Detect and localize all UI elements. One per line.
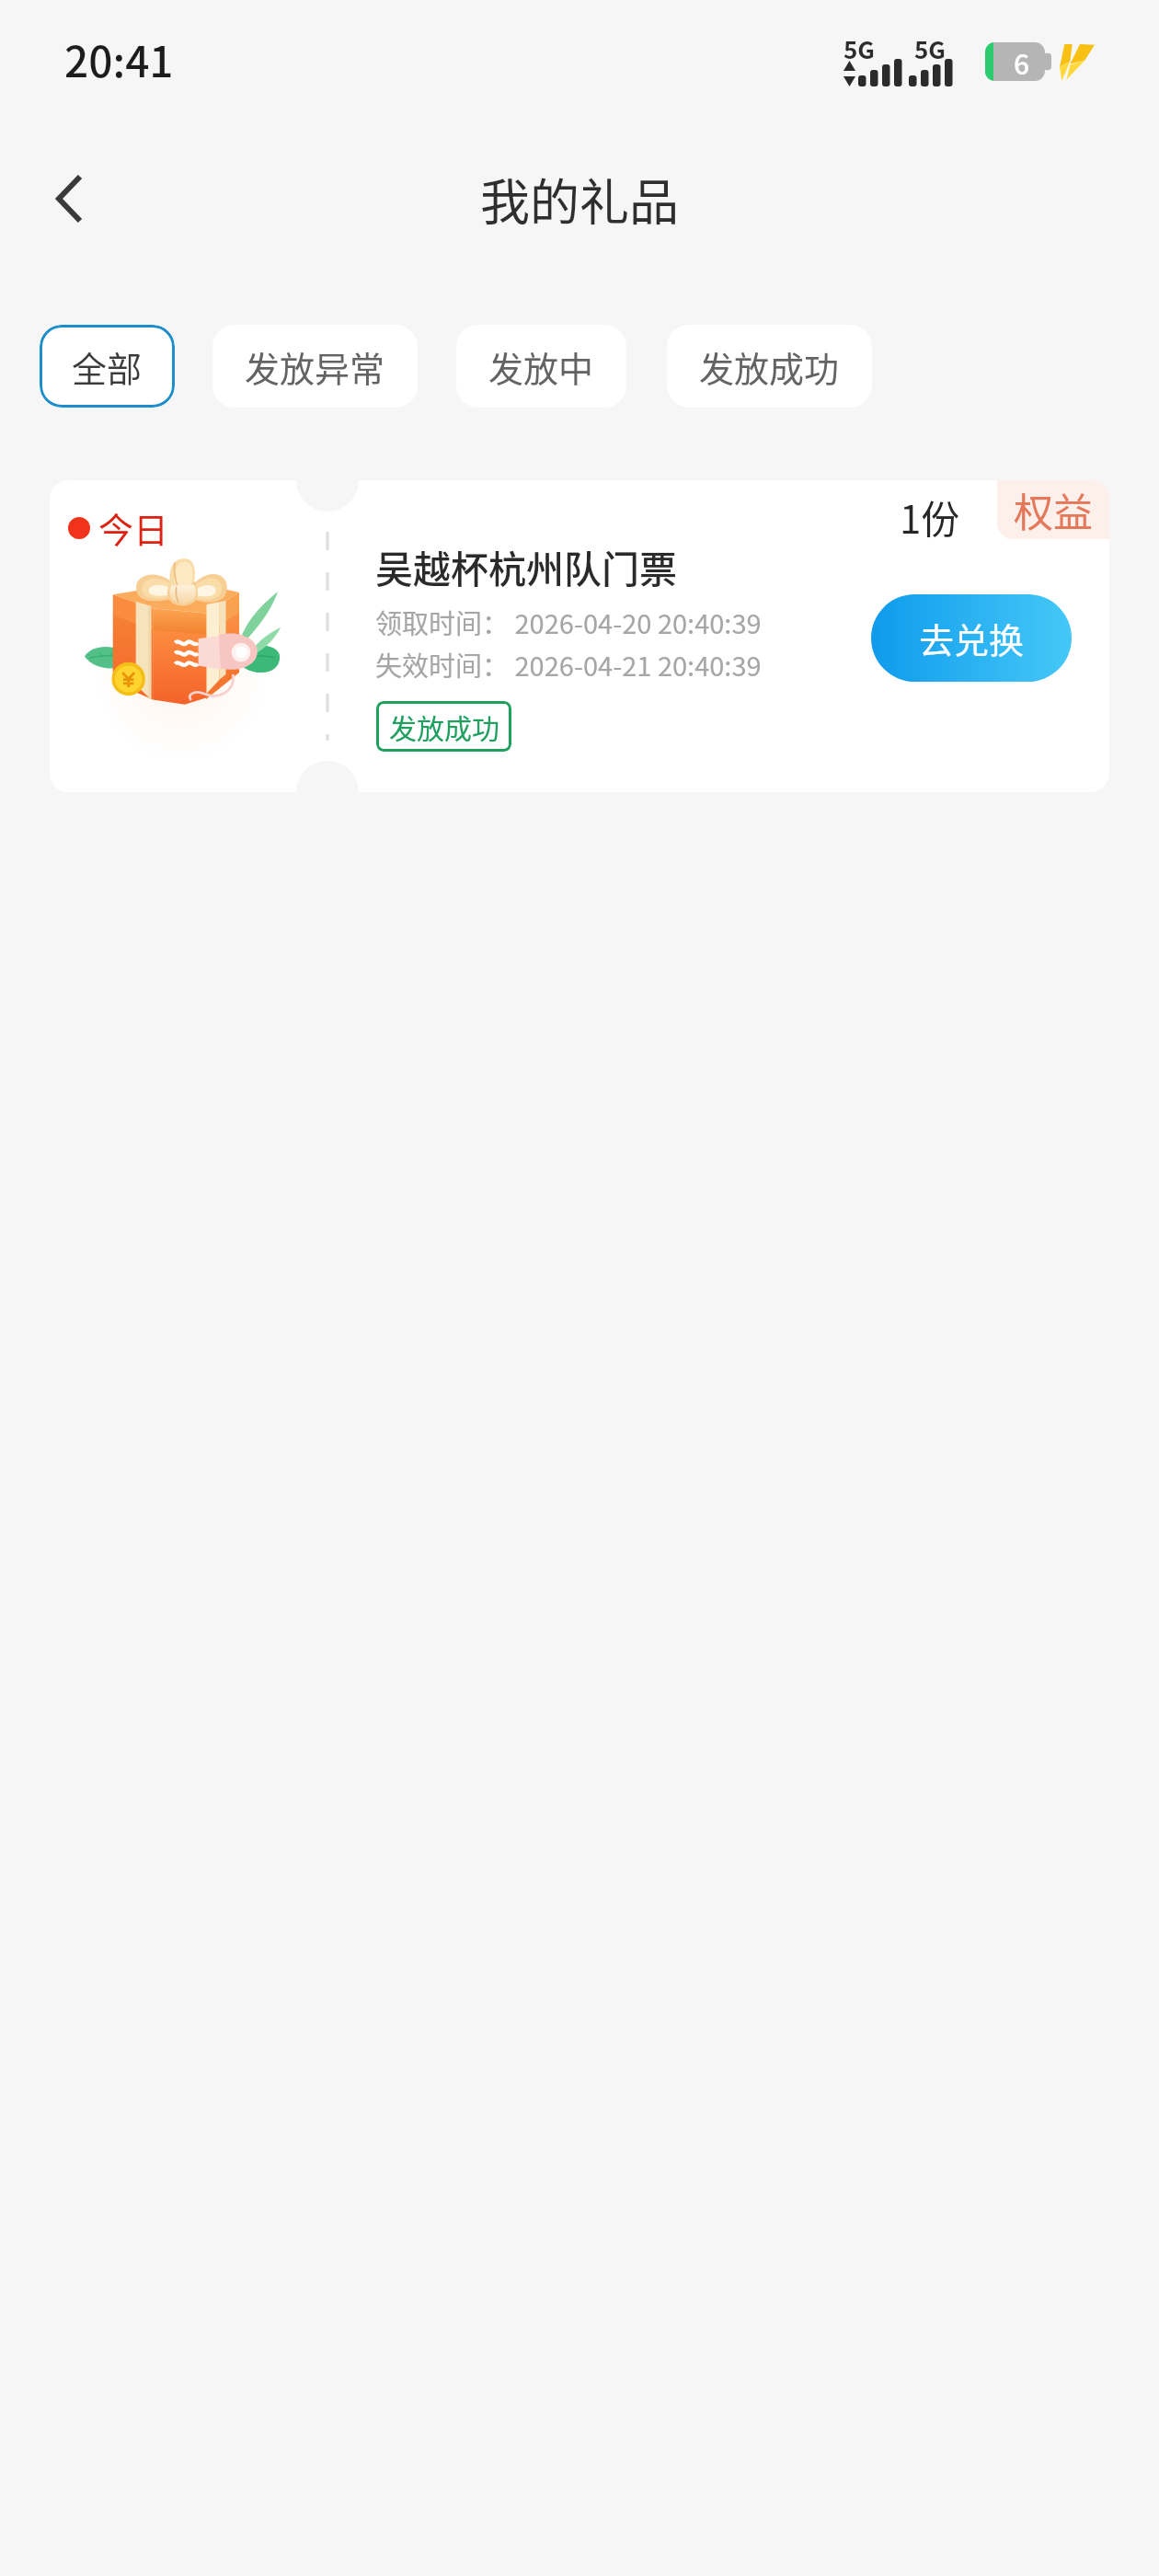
staticText: 发放成功 [389, 707, 499, 746]
staticText: 我的礼品 [480, 163, 679, 235]
staticText: 发放中 [488, 341, 594, 392]
staticText: 发放异常 [245, 341, 385, 392]
staticText: 5G [843, 31, 875, 66]
staticText: 去兑换 [919, 613, 1025, 663]
button[interactable]: 发放异常 [212, 325, 418, 408]
staticText: 20:41 [64, 29, 174, 90]
staticText: 权益 [1014, 481, 1093, 538]
staticText: 5G [914, 31, 946, 66]
staticText: 领取时间： 2026-04-20 20:40:39 [375, 603, 762, 641]
staticText: 失效时间： 2026-04-21 20:40:39 [375, 645, 762, 684]
button[interactable]: 全部 [40, 325, 175, 408]
staticText: 今日 [98, 502, 169, 553]
staticText: 1份 [900, 489, 960, 545]
button[interactable]: 去兑换 [871, 594, 1072, 682]
staticText: 6 [1014, 42, 1030, 81]
button[interactable]: Back [20, 149, 118, 248]
staticText: 吴越杯杭州队门票 [375, 539, 677, 593]
button[interactable]: 今日 [50, 480, 1109, 792]
staticText: 发放成功 [699, 341, 840, 392]
staticText: 全部 [72, 341, 143, 392]
button[interactable]: 发放成功 [667, 325, 872, 408]
button[interactable]: 发放中 [456, 325, 626, 408]
